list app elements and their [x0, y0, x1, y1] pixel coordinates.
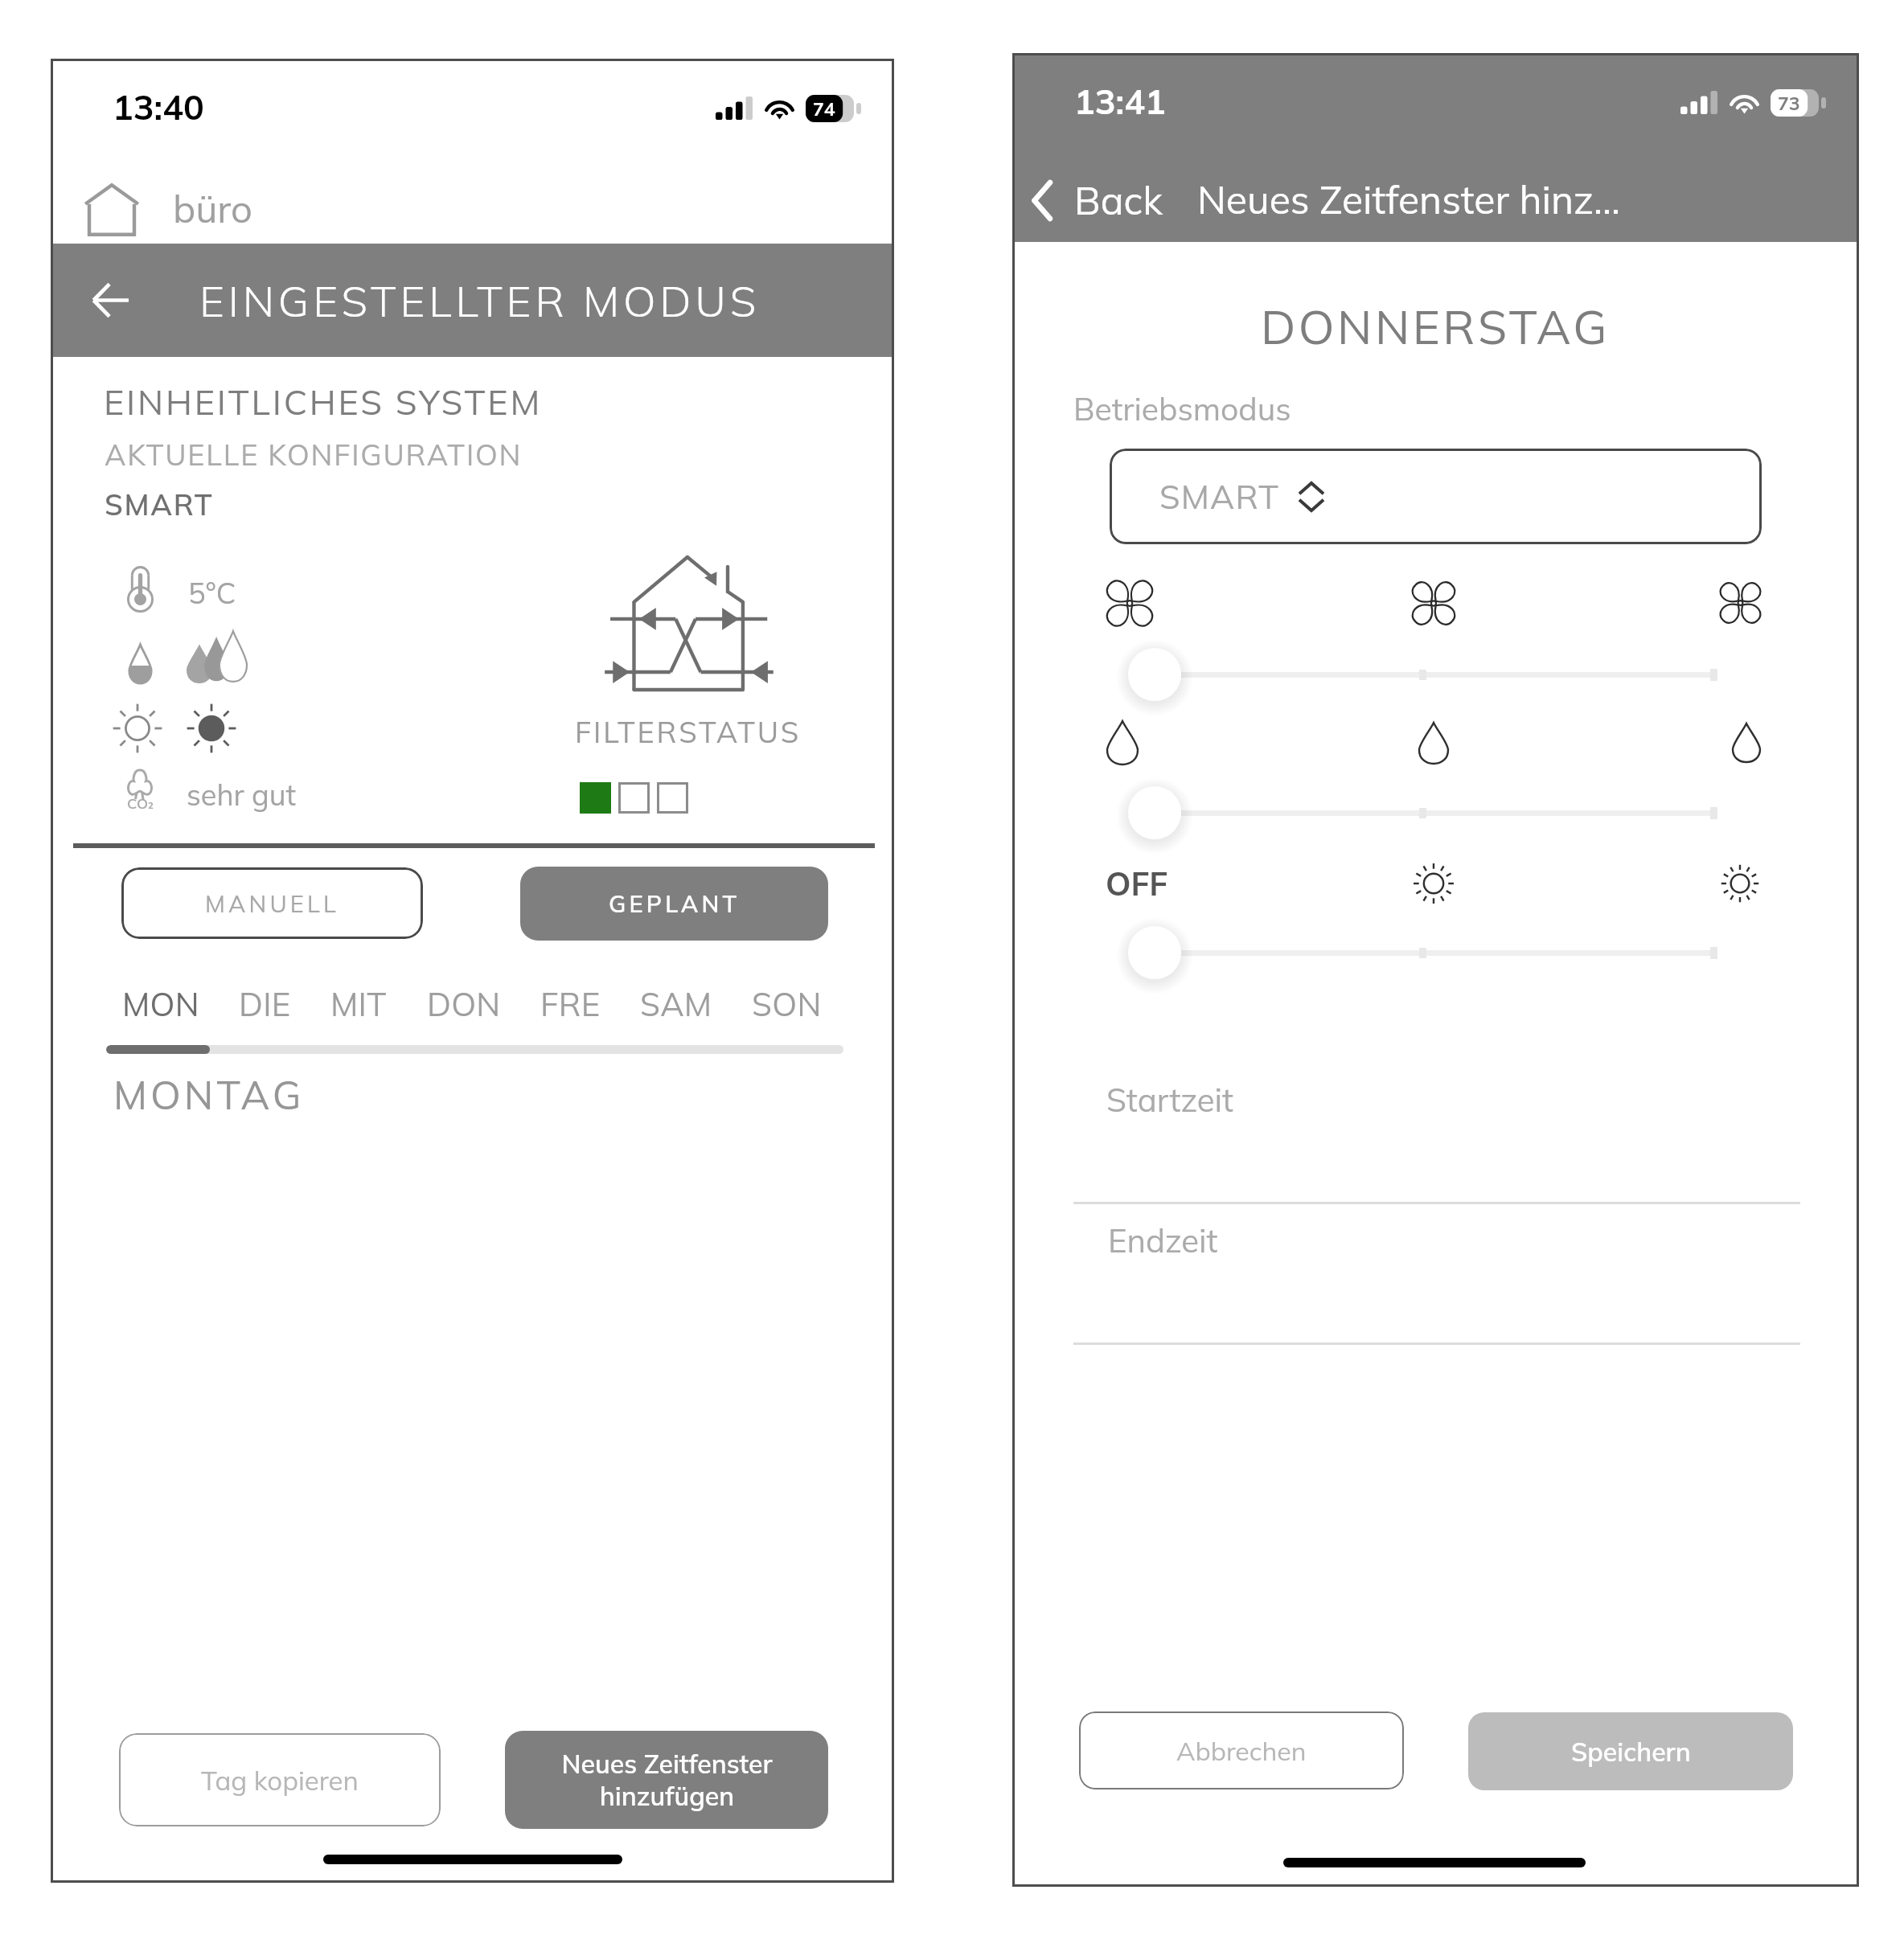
staticText: Endzeit: [1108, 1220, 1218, 1261]
button[interactable]: Slider: [1128, 644, 1717, 705]
staticText: Startzeit: [1106, 1080, 1234, 1120]
staticText: MIT: [330, 984, 387, 1024]
staticText: MANUELL: [205, 889, 340, 918]
staticText: DONNERSTAG: [1261, 297, 1611, 356]
staticText: AKTUELLE KONFIGURATION: [105, 437, 523, 473]
button[interactable]: Neues Zeitfenster hinzufügen: [505, 1731, 828, 1829]
button[interactable]: Speichern: [1468, 1712, 1793, 1790]
button[interactable]: Slider: [1128, 782, 1717, 843]
staticText: EINGESTELLTER MODUS: [199, 274, 760, 328]
staticText: CO₂: [127, 794, 154, 813]
button[interactable]: SON: [747, 978, 827, 1031]
staticText: SON: [752, 984, 822, 1024]
button[interactable]: DON: [422, 978, 506, 1031]
staticText: sehr gut: [187, 777, 297, 813]
staticText: SMART: [1159, 476, 1280, 517]
staticText: Neues Zeitfenster hinzufügen: [561, 1748, 773, 1812]
staticText: 13:41: [1074, 80, 1166, 123]
staticText: Back: [1074, 176, 1163, 224]
button[interactable]: Back: [1022, 166, 1174, 235]
staticText: MONTAG: [113, 1070, 305, 1119]
staticText: SAM: [640, 984, 712, 1024]
button[interactable]: Back: [61, 244, 159, 357]
staticText: Speichern: [1571, 1736, 1691, 1768]
button[interactable]: SAM: [635, 978, 717, 1031]
staticText: Betriebsmodus: [1073, 389, 1291, 428]
button[interactable]: GEPLANT: [520, 867, 828, 941]
staticText: 5°C: [188, 575, 236, 611]
staticText: MON: [122, 984, 199, 1024]
staticText: 73: [1778, 92, 1800, 115]
staticText: FILTERSTATUS: [575, 714, 802, 750]
button[interactable]: MIT: [326, 978, 392, 1031]
button[interactable]: MON: [117, 978, 204, 1031]
staticText: 13:40: [113, 85, 204, 129]
staticText: DIE: [239, 984, 291, 1024]
staticText: 74: [813, 97, 835, 121]
staticText: büro: [173, 185, 252, 232]
staticText: DON: [427, 984, 501, 1024]
staticText: Tag kopieren: [201, 1764, 359, 1797]
button[interactable]: DIE: [234, 978, 296, 1031]
button[interactable]: Tag kopieren: [119, 1733, 441, 1826]
staticText: OFF: [1106, 863, 1168, 904]
staticText: FRE: [540, 984, 601, 1024]
button[interactable]: MANUELL: [121, 867, 423, 939]
staticText: SMART: [105, 486, 214, 523]
staticText: EINHEITLICHES SYSTEM: [104, 380, 543, 424]
button[interactable]: Slider: [1128, 922, 1717, 983]
staticText: GEPLANT: [609, 889, 741, 918]
staticText: Neues Zeitfenster hinz...: [1197, 175, 1620, 223]
button[interactable]: FRE: [535, 978, 605, 1031]
button[interactable]: büro: [51, 183, 894, 244]
staticText: Abbrechen: [1176, 1735, 1307, 1767]
button[interactable]: SMART: [1110, 449, 1762, 544]
button[interactable]: Abbrechen: [1079, 1711, 1404, 1789]
